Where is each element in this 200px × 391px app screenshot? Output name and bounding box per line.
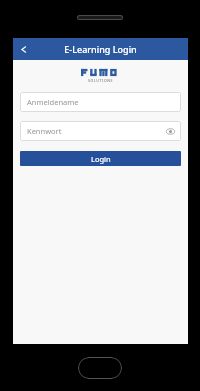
button[interactable]: Show password (163, 124, 177, 138)
staticText: E-Learning Login (64, 43, 137, 55)
staticText: Kennwort (27, 126, 62, 136)
button[interactable]: Kennwort (20, 121, 181, 141)
button[interactable]: Anmeldename (20, 92, 181, 112)
button[interactable]: Login (20, 151, 181, 166)
staticText: SOLUTIONS (88, 78, 114, 83)
button[interactable]: Back (13, 38, 35, 60)
staticText: Anmeldename (27, 97, 79, 107)
staticText: Login (91, 154, 111, 164)
